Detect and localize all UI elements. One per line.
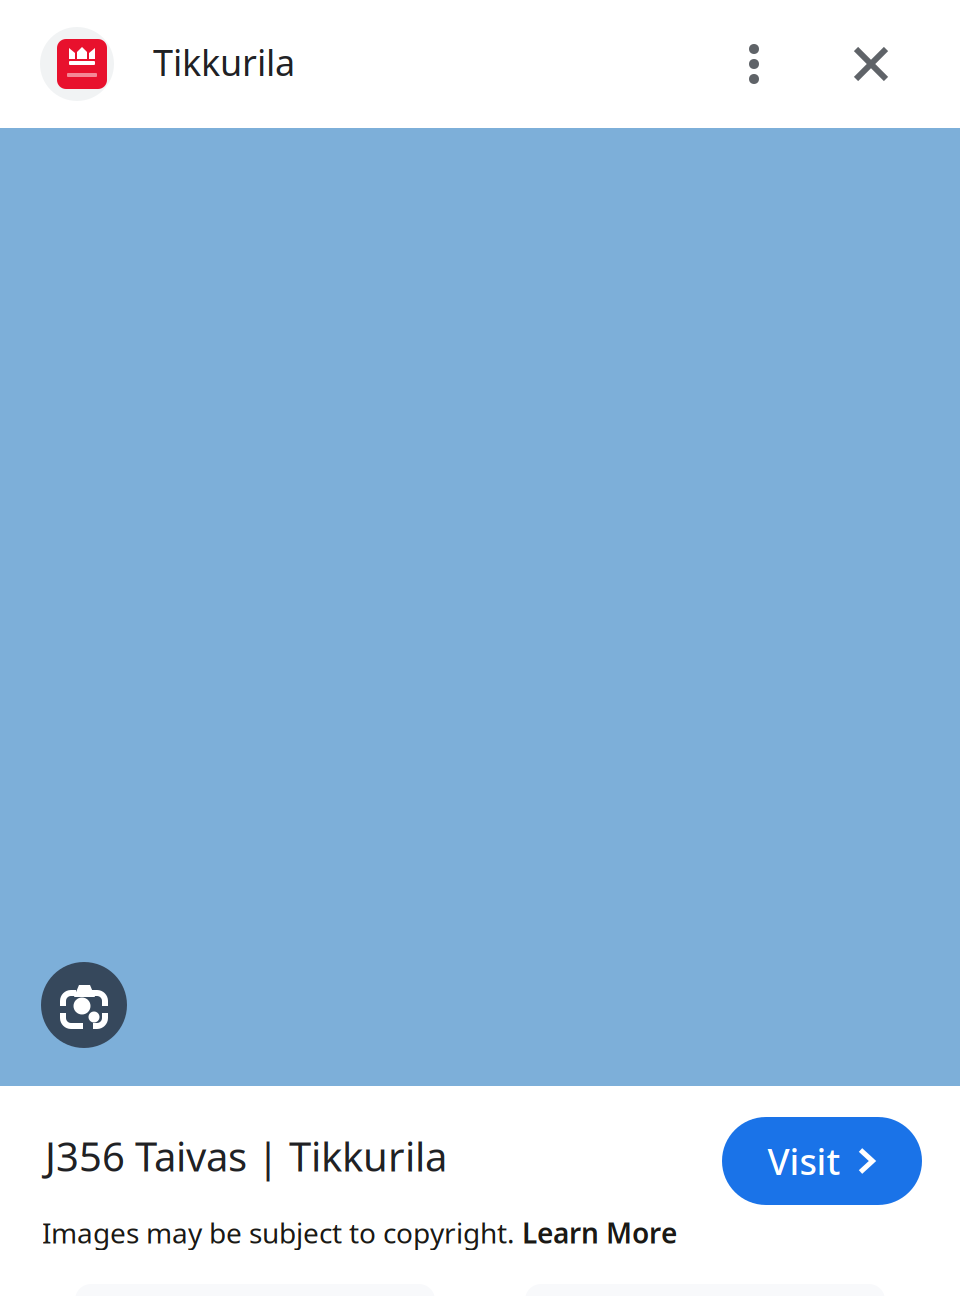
- staticText: Visit: [767, 1137, 840, 1185]
- button[interactable]: Search inside image with Google Lens: [41, 962, 127, 1048]
- staticText: J356 Taivas | Tikkurila: [45, 1129, 447, 1182]
- staticText: Tikkurila: [153, 38, 295, 86]
- button[interactable]: Visit: [715, 1112, 915, 1200]
- button[interactable]: Images may be subject to copyright. Lear…: [42, 1214, 677, 1251]
- button[interactable]: More options: [718, 28, 790, 100]
- button[interactable]: Tikkurila: [0, 27, 295, 101]
- button[interactable]: Close: [835, 28, 907, 100]
- staticText: Images may be subject to copyright. Lear…: [42, 1214, 677, 1251]
